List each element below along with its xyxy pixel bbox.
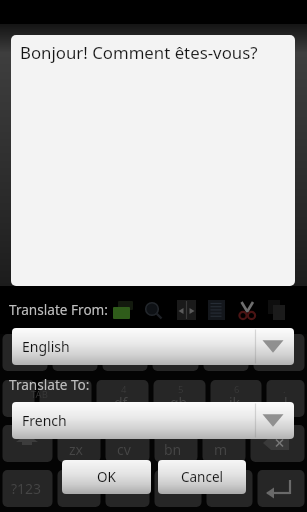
staticText: l	[284, 393, 288, 412]
staticText: m	[214, 440, 228, 459]
staticText: English	[22, 337, 70, 356]
button[interactable]: OK	[62, 460, 151, 494]
staticText: Cancel	[181, 468, 224, 486]
staticText: 6	[234, 383, 240, 396]
staticText: gh	[170, 393, 188, 412]
other: Text selection actions	[110, 296, 300, 322]
staticText: French	[22, 411, 67, 430]
staticText: zx	[69, 440, 83, 459]
staticText: 4	[121, 383, 127, 396]
button[interactable]: English	[12, 328, 294, 365]
staticText: Translate From:	[9, 300, 108, 319]
button[interactable]: Cancel	[158, 460, 246, 494]
staticText: TAB	[31, 388, 48, 401]
staticText: 5	[178, 383, 184, 396]
button[interactable]: French	[12, 402, 294, 439]
staticText: bn	[164, 440, 182, 459]
staticText: cv	[117, 440, 131, 459]
staticText: ?123	[11, 479, 42, 498]
staticText: OK	[97, 468, 116, 486]
staticText: df	[114, 393, 128, 412]
staticText: Translate To:	[9, 375, 90, 394]
staticText: Bonjour! Comment êtes-vous?	[20, 41, 258, 64]
staticText: jk	[229, 393, 241, 412]
